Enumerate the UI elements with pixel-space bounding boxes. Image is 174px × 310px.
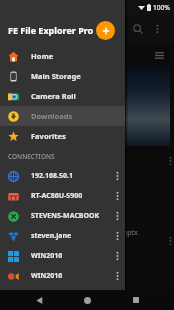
staticText: Aggregate Supply Policies.pptx [36,228,138,238]
button[interactable]: More options for 192.168.50.1 [112,167,122,185]
button[interactable]: Home [77,290,97,310]
button[interactable]: Camera Roll [0,86,125,106]
button[interactable]: Type [6,48,34,62]
button[interactable]: More options for STEVENS-MACBOOK [112,207,122,225]
staticText: W [82,277,93,292]
button[interactable]: Search [128,19,148,39]
button[interactable]: steven.jane [0,226,125,246]
button[interactable]: Recent apps [126,290,146,310]
button[interactable]: Downloads [0,106,125,126]
button[interactable]: Favorites [0,126,125,146]
button[interactable]: RT-AC86U-5900 [0,186,125,206]
staticText: WIN2016 [31,271,112,281]
staticText: 100% [153,3,170,12]
staticText: RT-AC86U-5900 [31,191,112,201]
button[interactable]: View mode [150,46,168,64]
button[interactable]: P [67,178,107,226]
button[interactable]: Add connection [96,21,115,40]
staticText: CONNECTIONS [8,152,55,161]
staticText: Main Storage [31,71,81,81]
button[interactable]: 192.168.50.1 [0,166,125,186]
button[interactable]: More options for steven.jane [112,227,122,245]
button[interactable]: More options for WIN2016 [112,247,122,265]
staticText: Home [31,51,54,61]
button[interactable]: W [67,260,107,308]
staticText: Camera Roll [31,91,76,101]
button[interactable]: WIN2016 [0,246,125,266]
staticText: FE File Explorer Pro [8,24,94,36]
staticText: steven.jane [31,231,112,241]
button[interactable] [4,66,170,146]
staticText: Type [12,50,28,60]
button[interactable]: Home [0,46,125,66]
button[interactable]: More options for RT-AC86U-5900 [112,187,122,205]
button[interactable]: WIN2016 [0,266,125,286]
staticText: 192.168.50.1 [31,171,112,181]
button[interactable]: STEVENS-MACBOOK [0,206,125,226]
button[interactable]: More options [148,20,166,38]
staticText: Downloads [31,111,73,121]
staticText: Favorites [31,131,66,141]
button[interactable]: Main Storage [0,66,125,86]
staticText: WIN2016 [31,251,112,261]
staticText: STEVENS-MACBOOK [31,211,112,221]
button[interactable]: More options for WIN2016 [112,267,122,285]
button[interactable]: Back [29,290,49,310]
